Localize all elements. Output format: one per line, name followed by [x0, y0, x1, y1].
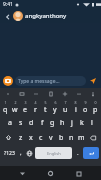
staticText: e — [23, 105, 27, 115]
staticText: w — [12, 105, 18, 115]
staticText: p — [93, 105, 98, 115]
button[interactable]: Back — [3, 12, 12, 21]
staticText: q — [3, 105, 8, 115]
staticText: angkyanthony — [25, 12, 67, 20]
staticText: l — [91, 118, 93, 128]
staticText: t — [44, 105, 47, 115]
button[interactable]: m — [76, 130, 86, 145]
staticText: , — [20, 149, 22, 157]
button[interactable]: angkyanthony — [13, 11, 98, 21]
staticText: 7 — [64, 100, 67, 105]
button[interactable]: 7 — [60, 100, 70, 115]
staticText: 8 — [74, 100, 77, 105]
button[interactable]: 8 — [70, 100, 80, 115]
staticText: o — [83, 105, 88, 115]
button[interactable]: . — [73, 147, 82, 159]
staticText: i — [75, 105, 77, 115]
staticText: 3 — [24, 100, 27, 105]
button[interactable]: g — [47, 115, 57, 130]
staticText: k — [80, 118, 84, 128]
staticText: r — [34, 105, 37, 115]
button[interactable]: Send — [88, 76, 98, 86]
staticText: n — [69, 133, 74, 143]
button[interactable]: 9 — [80, 100, 90, 115]
staticText: Type a message... — [18, 78, 60, 85]
button[interactable]: h — [57, 115, 67, 130]
staticText: 1 — [4, 100, 7, 105]
staticText: English — [47, 151, 61, 156]
button[interactable]: Keyboard tool 7 — [89, 90, 97, 98]
staticText: v — [49, 133, 53, 143]
staticText: ?123 — [4, 150, 15, 157]
button[interactable]: Space — [35, 147, 72, 159]
button[interactable]: Enter — [83, 147, 99, 159]
button[interactable]: f — [37, 115, 47, 130]
button[interactable]: z — [16, 130, 26, 145]
button[interactable]: Backspace — [86, 130, 100, 145]
staticText: c — [39, 133, 43, 143]
staticText: g — [50, 118, 55, 128]
button[interactable]: 4 — [30, 100, 40, 115]
button[interactable]: Camera — [3, 76, 13, 86]
staticText: . — [77, 149, 79, 157]
staticText: j — [71, 118, 73, 128]
staticText: x — [29, 133, 33, 143]
button[interactable]: Back — [17, 168, 28, 179]
staticText: z — [19, 133, 23, 143]
staticText: 4 — [34, 100, 37, 105]
button[interactable]: v — [46, 130, 56, 145]
button[interactable]: 0 — [90, 100, 100, 115]
button[interactable]: x — [26, 130, 36, 145]
button[interactable]: 2 — [10, 100, 20, 115]
button[interactable]: Keyboard tool 1 — [4, 90, 12, 98]
button[interactable]: Type a message... — [15, 76, 86, 86]
button[interactable]: j — [67, 115, 77, 130]
button[interactable]: Keyboard tool 3 — [32, 90, 40, 98]
button[interactable]: a — [4, 115, 15, 130]
staticText: a — [8, 118, 12, 128]
staticText: 5 — [44, 100, 47, 105]
button[interactable]: Emoji — [16, 147, 25, 159]
button[interactable]: Keyboard tool 6 — [75, 90, 83, 98]
staticText: b — [59, 133, 64, 143]
button[interactable]: n — [66, 130, 76, 145]
staticText: 9 — [84, 100, 87, 105]
staticText: 6 — [54, 100, 57, 105]
button[interactable]: Shift — [1, 130, 16, 145]
button[interactable]: Home — [45, 168, 56, 179]
button[interactable]: Keyboard tool 4 — [47, 90, 55, 98]
button[interactable]: d — [26, 115, 37, 130]
staticText: 2 — [14, 100, 17, 105]
button[interactable]: l — [87, 115, 97, 130]
staticText: 0 — [94, 100, 97, 105]
staticText: f — [41, 118, 44, 128]
button[interactable]: 3 — [20, 100, 30, 115]
button[interactable]: 5 — [40, 100, 50, 115]
button[interactable]: c — [36, 130, 46, 145]
button[interactable]: Keyboard tool 2 — [18, 90, 26, 98]
button[interactable]: s — [15, 115, 26, 130]
staticText: 9:41 — [3, 1, 13, 8]
button[interactable]: 6 — [50, 100, 60, 115]
staticText: m — [78, 133, 85, 143]
staticText: y — [53, 105, 57, 115]
staticText: s — [19, 118, 23, 128]
button[interactable]: k — [77, 115, 87, 130]
staticText: d — [29, 118, 34, 128]
button[interactable]: Keyboard tool 5 — [61, 90, 69, 98]
button[interactable]: 1 — [1, 100, 10, 115]
staticText: u — [63, 105, 68, 115]
button[interactable]: Change language — [25, 147, 34, 159]
staticText: h — [60, 118, 65, 128]
button[interactable]: ?123 — [2, 147, 16, 159]
button[interactable]: Recents — [73, 168, 84, 179]
button[interactable]: b — [56, 130, 66, 145]
